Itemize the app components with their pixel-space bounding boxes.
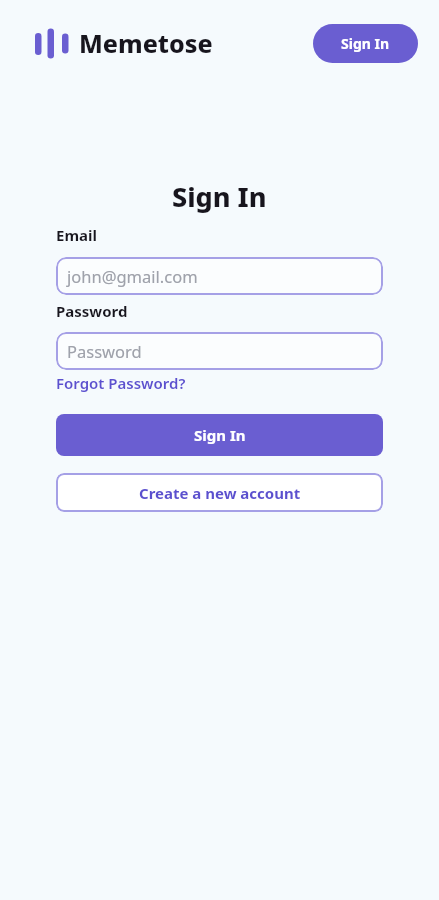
button[interactable]: Sign In (56, 414, 383, 456)
button[interactable]: john@gmail.com (56, 257, 383, 295)
staticText: Sign In (341, 34, 390, 53)
button[interactable]: Forgot Password? (56, 373, 186, 393)
staticText: Password (67, 340, 142, 362)
staticText: Memetose (79, 26, 213, 60)
staticText: Sign In (172, 178, 267, 215)
staticText: john@gmail.com (67, 265, 198, 287)
staticText: Forgot Password? (56, 373, 186, 393)
staticText: Email (56, 225, 97, 245)
button[interactable]: Sign In (313, 24, 418, 63)
button[interactable]: Password (56, 332, 383, 370)
staticText: Sign In (194, 425, 246, 445)
button[interactable]: Create a new account (56, 473, 383, 512)
staticText: Password (56, 301, 128, 321)
staticText: Create a new account (139, 483, 301, 503)
